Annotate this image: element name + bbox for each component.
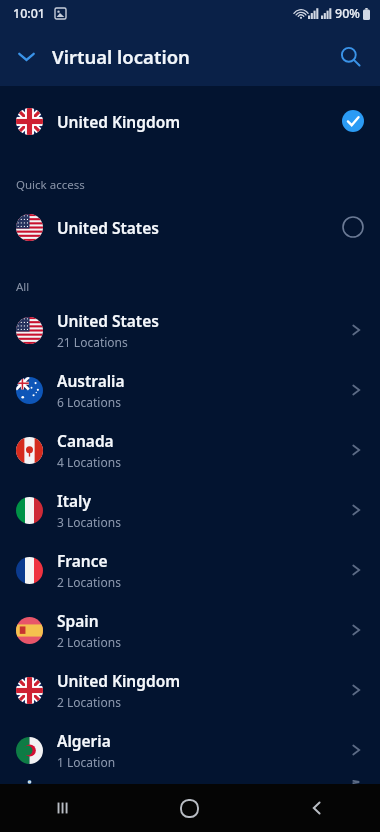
button[interactable]: Australia (0, 360, 380, 420)
staticText: United States (57, 310, 159, 331)
button[interactable]: Home (126, 784, 253, 832)
staticText: 2 Locations (57, 694, 121, 710)
staticText: 3 Locations (57, 514, 121, 530)
staticText: 21 Locations (57, 334, 128, 350)
button[interactable]: Italy (0, 480, 380, 540)
staticText: 2 Locations (57, 634, 121, 650)
staticText: 1 Location (57, 754, 116, 770)
button[interactable]: United States (0, 198, 380, 256)
button[interactable]: Canada (0, 420, 380, 480)
button[interactable]: United States (0, 300, 380, 360)
staticText: 4 Locations (57, 454, 121, 470)
staticText: 10:01 (13, 5, 46, 22)
button[interactable]: Argentina (0, 780, 380, 784)
button[interactable]: Collapse (6, 36, 46, 76)
staticText: 2 Locations (57, 574, 121, 590)
staticText: 90% (335, 5, 360, 22)
button[interactable]: France (0, 540, 380, 600)
staticText: Canada (57, 430, 114, 451)
staticText: France (57, 550, 108, 571)
button[interactable]: Back (253, 784, 380, 832)
button[interactable]: United Kingdom (0, 660, 380, 720)
staticText: Algeria (57, 730, 111, 751)
staticText: United States (57, 217, 159, 238)
button[interactable]: United Kingdom (0, 92, 380, 150)
staticText: Spain (57, 610, 99, 631)
staticText: Virtual location (52, 44, 190, 69)
staticText: 6 Locations (57, 394, 121, 410)
staticText: United Kingdom (57, 670, 181, 691)
staticText: Italy (57, 490, 91, 511)
button[interactable]: Spain (0, 600, 380, 660)
staticText: United Kingdom (57, 111, 181, 132)
button[interactable]: Recents (0, 784, 126, 832)
button[interactable]: Algeria (0, 720, 380, 780)
staticText: Australia (57, 370, 125, 391)
staticText: Quick access (16, 177, 85, 193)
button[interactable]: Search (329, 35, 371, 77)
staticText: All (16, 279, 30, 295)
